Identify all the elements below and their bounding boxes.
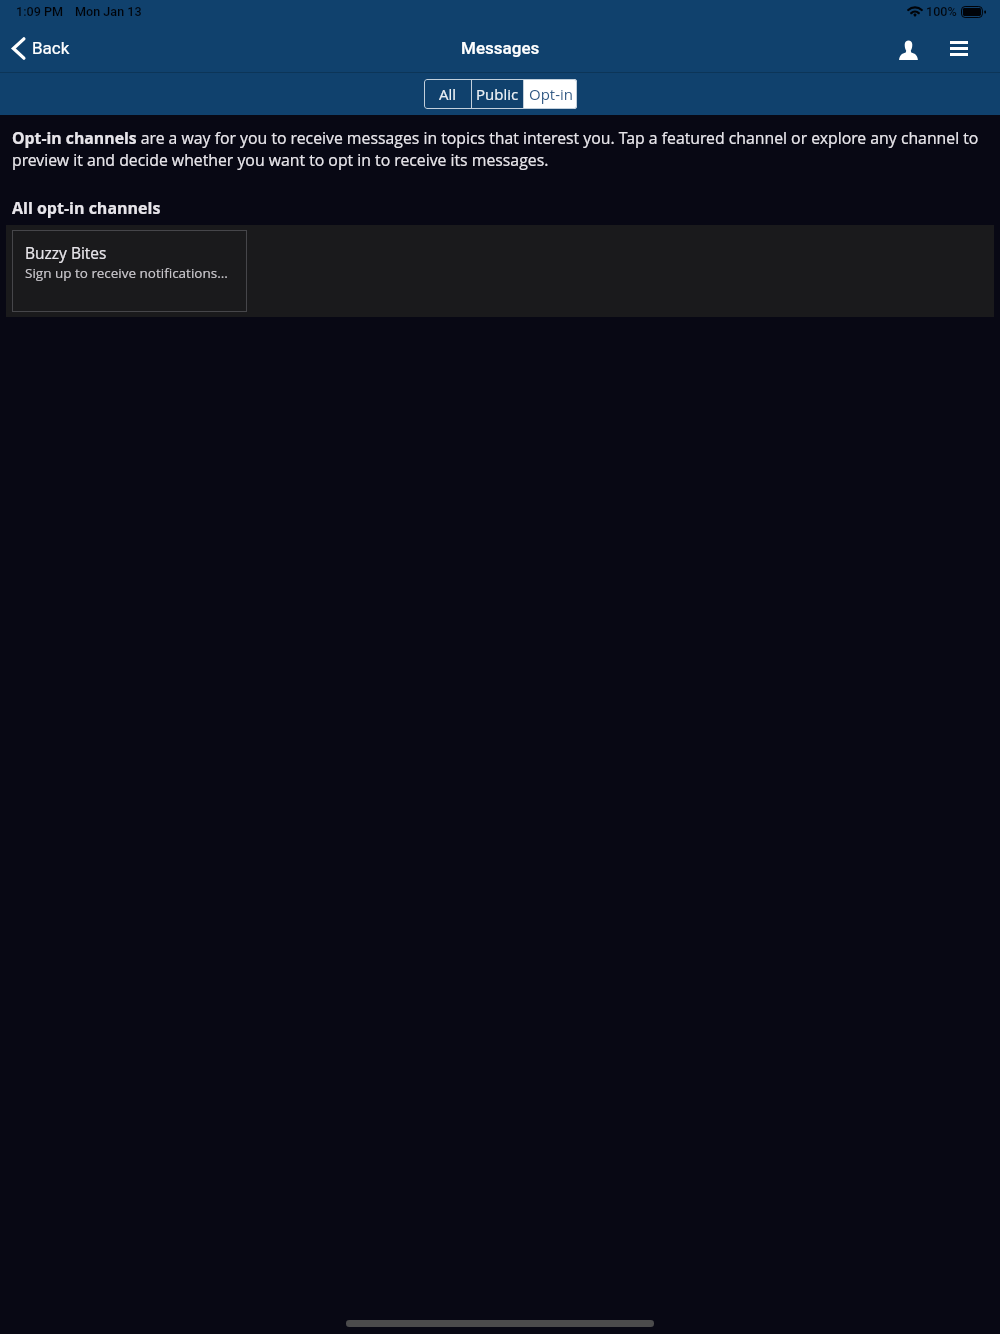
staticText: All opt-in channels [12, 197, 161, 219]
staticText: Mon Jan 13 [75, 4, 142, 19]
staticText: Opt-in [529, 84, 573, 104]
button[interactable]: Public [472, 79, 523, 109]
staticText: Public [476, 84, 519, 104]
staticText: Sign up to receive notifications... [25, 264, 228, 282]
button[interactable]: Back [0, 27, 82, 72]
button[interactable]: Buzzy Bites [12, 230, 247, 312]
staticText: Buzzy Bites [25, 242, 107, 263]
staticText: Opt-in channels are a way for you to rec… [12, 127, 990, 171]
button[interactable]: Profile [886, 27, 930, 72]
staticText: 1:09 PM [16, 4, 64, 19]
staticText: All [439, 84, 457, 104]
staticText: Back [32, 38, 70, 58]
button[interactable]: Menu [937, 27, 981, 72]
button[interactable]: All [424, 79, 471, 109]
staticText: 100% [926, 4, 957, 19]
button[interactable]: Opt-in [524, 79, 577, 109]
staticText: Messages [461, 38, 540, 58]
